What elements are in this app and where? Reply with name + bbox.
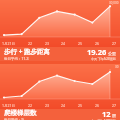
staticText: 步行 + 跑步距离 (4, 47, 51, 56)
staticText: 24 (61, 103, 66, 108)
staticText: 27 (112, 103, 117, 108)
staticText: 24 (61, 41, 66, 46)
staticText: 30 (115, 65, 119, 69)
staticText: 今天 下午5:28更新 (91, 57, 116, 61)
staticText: 爬楼梯层数 (4, 109, 37, 117)
staticText: 26 (95, 41, 100, 46)
staticText: 27 (112, 41, 117, 46)
staticText: 30,000 (109, 1, 119, 5)
staticText: 22 (28, 41, 33, 46)
staticText: 25 (78, 41, 83, 46)
staticText: 公里 (108, 51, 116, 56)
staticText: 12 (102, 109, 111, 119)
staticText: 23 (45, 103, 50, 108)
staticText: 今天 下午5:08更新 (91, 119, 116, 120)
staticText: 每日平均：9 (4, 117, 24, 120)
button[interactable]: 步行 + 跑步距离 (0, 47, 120, 61)
button[interactable]: 爬楼梯层数 (0, 109, 120, 120)
staticText: 1月21日 (2, 103, 16, 108)
staticText: 层 (112, 113, 116, 118)
staticText: 23 (45, 41, 50, 46)
staticText: 22 (28, 103, 33, 108)
button[interactable]: 30 (0, 64, 120, 109)
staticText: 19.26 (87, 47, 107, 57)
staticText: 26 (95, 103, 100, 108)
staticText: 25 (78, 103, 83, 108)
staticText: 每日平均：11.3 (4, 56, 29, 61)
button[interactable]: 30,000 (0, 0, 120, 47)
staticText: 1月21日 (2, 41, 16, 46)
